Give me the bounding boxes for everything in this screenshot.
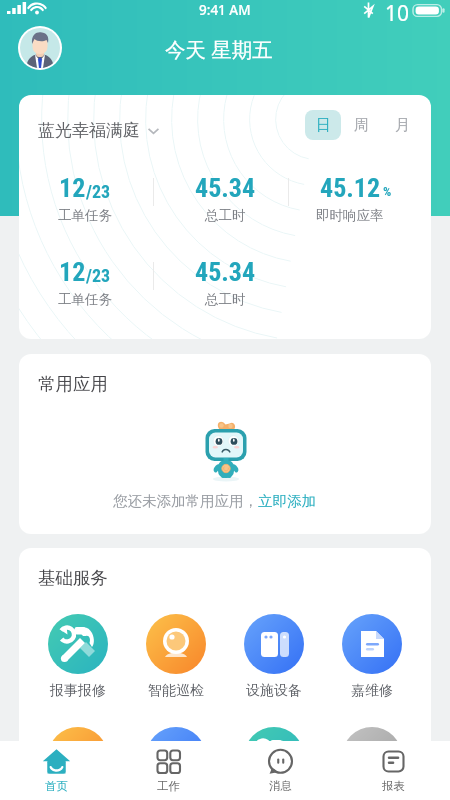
button[interactable]: 报事报修: [29, 614, 127, 700]
staticText: /23: [86, 265, 111, 286]
staticText: 12: [59, 173, 86, 203]
button[interactable]: 周: [341, 110, 382, 140]
staticText: 45.12: [320, 173, 381, 203]
staticText: 嘉维修: [351, 682, 393, 700]
staticText: 日: [316, 116, 331, 135]
staticText: 今天 星期五: [165, 35, 273, 63]
button[interactable]: 消息: [224, 741, 337, 800]
staticText: 9:41 AM: [199, 1, 251, 19]
button[interactable]: [29, 727, 127, 787]
staticText: 工单任务: [58, 207, 112, 224]
button[interactable]: 工作: [112, 741, 224, 800]
staticText: 消息: [269, 779, 292, 793]
staticText: 工作: [157, 779, 180, 793]
staticText: 您还未添加常用应用，: [113, 492, 258, 510]
staticText: 45.34: [195, 257, 256, 287]
staticText: 总工时: [205, 207, 246, 224]
staticText: 总工时: [205, 291, 246, 308]
staticText: 工单任务: [58, 291, 112, 308]
staticText: 首页: [45, 779, 68, 793]
button[interactable]: [323, 727, 421, 787]
staticText: 设施设备: [246, 682, 302, 700]
button[interactable]: [127, 727, 225, 787]
button[interactable]: 嘉维修: [323, 614, 421, 700]
staticText: 报表: [382, 779, 405, 793]
button[interactable]: 首页: [0, 741, 112, 800]
staticText: 智能巡检: [148, 682, 204, 700]
button[interactable]: 立即添加: [258, 492, 316, 510]
staticText: 12: [59, 257, 86, 287]
button[interactable]: 月: [382, 110, 423, 140]
staticText: 45.34: [195, 173, 256, 203]
staticText: 常用应用: [38, 373, 108, 395]
staticText: 即时响应率: [316, 207, 384, 224]
button[interactable]: [225, 727, 323, 787]
staticText: 蓝光幸福满庭: [38, 120, 140, 141]
staticText: 基础服务: [38, 567, 108, 589]
staticText: 10: [385, 0, 410, 21]
staticText: 周: [354, 116, 369, 135]
button[interactable]: 智能巡检: [127, 614, 225, 700]
staticText: 月: [395, 116, 410, 135]
staticText: 报事报修: [50, 682, 106, 700]
button[interactable]: 报表: [337, 741, 450, 800]
staticText: /23: [86, 181, 111, 202]
button[interactable]: 日: [305, 110, 341, 140]
button[interactable]: 蓝光幸福满庭: [31, 118, 167, 143]
button[interactable]: 设施设备: [225, 614, 323, 700]
staticText: %: [383, 184, 392, 199]
button[interactable]: Profile: [18, 26, 62, 70]
